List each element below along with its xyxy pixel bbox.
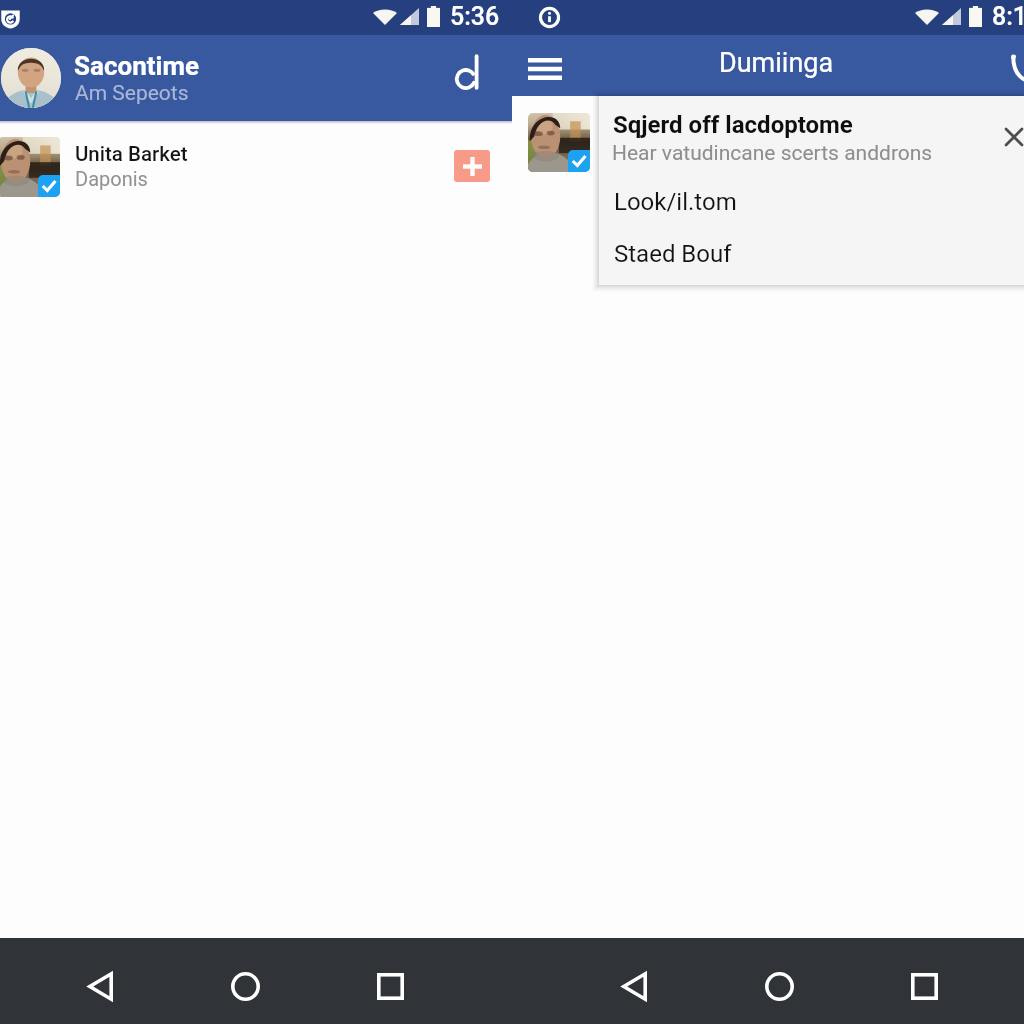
button[interactable] <box>513 96 1024 216</box>
staticText: Dumiinga <box>719 47 834 79</box>
button[interactable]: Close <box>994 117 1024 157</box>
button[interactable]: Recents <box>360 956 420 1016</box>
button[interactable]: Home <box>215 956 275 1016</box>
button[interactable]: Add <box>454 150 490 182</box>
staticText: Unita Barket <box>75 142 188 166</box>
staticText: Sacontime <box>74 51 199 81</box>
button[interactable]: Call <box>1002 45 1024 91</box>
button[interactable]: Recents <box>894 956 954 1016</box>
staticText: Daponis <box>75 167 148 190</box>
staticText: Hear vatudincane scerts anddrons <box>612 141 933 166</box>
button[interactable]: Look/il.tom <box>599 176 1024 228</box>
button[interactable]: Staed Bouf <box>599 228 1024 280</box>
staticText: Staed Bouf <box>614 240 732 268</box>
staticText: Am Sepeots <box>75 81 189 106</box>
button[interactable]: Unita Barket <box>0 121 512 213</box>
button[interactable]: Sacontime <box>0 35 512 121</box>
button[interactable]: Menu <box>522 46 568 92</box>
button[interactable]: Search <box>447 49 493 95</box>
button[interactable]: Back <box>70 956 130 1016</box>
staticText: 5:36 <box>450 2 500 31</box>
staticText: Look/il.tom <box>614 188 737 216</box>
staticText: Sqjerd off lacdoptome <box>613 111 853 139</box>
button[interactable]: Back <box>604 956 664 1016</box>
button[interactable]: Home <box>749 956 809 1016</box>
staticText: 8:13 <box>992 2 1024 31</box>
